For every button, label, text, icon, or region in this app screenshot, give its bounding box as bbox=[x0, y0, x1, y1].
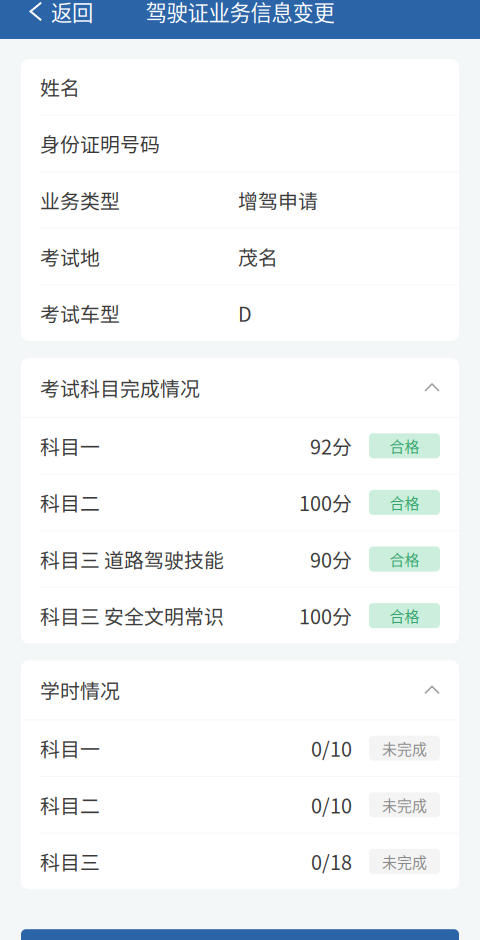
staticText: 驾驶证业务信息变更 bbox=[145, 0, 334, 27]
staticText: 业务类型 bbox=[40, 186, 120, 214]
staticText: 科目一 bbox=[40, 734, 100, 763]
button[interactable]: 返回 bbox=[0, 0, 107, 27]
staticText: 未完成 bbox=[382, 851, 427, 872]
staticText: 100分 bbox=[299, 488, 352, 517]
staticText: 考试科目完成情况 bbox=[40, 373, 200, 402]
button[interactable]: 提交 bbox=[21, 929, 459, 940]
staticText: 科目三 道路驾驶技能 bbox=[40, 545, 224, 573]
staticText: 考试地 bbox=[40, 242, 100, 271]
staticText: 姓名 bbox=[40, 72, 80, 101]
staticText: 100分 bbox=[299, 601, 352, 630]
staticText: 0/10 bbox=[311, 790, 352, 819]
staticText: 科目二 bbox=[40, 790, 100, 819]
staticText: 92分 bbox=[310, 431, 352, 460]
staticText: 合格 bbox=[389, 605, 419, 626]
staticText: 合格 bbox=[389, 548, 419, 570]
staticText: 合格 bbox=[389, 435, 419, 457]
staticText: 科目二 bbox=[40, 488, 100, 517]
staticText: 90分 bbox=[310, 545, 352, 573]
staticText: D bbox=[238, 299, 252, 328]
button[interactable]: 考试科目完成情况 bbox=[21, 358, 459, 417]
staticText: 未完成 bbox=[382, 737, 427, 759]
staticText: 科目三 安全文明常识 bbox=[40, 601, 224, 630]
staticText: 身份证明号码 bbox=[40, 129, 160, 158]
staticText: 0/10 bbox=[311, 734, 352, 763]
staticText: 学时情况 bbox=[40, 675, 120, 704]
button[interactable]: 学时情况 bbox=[21, 660, 459, 719]
staticText: 未完成 bbox=[382, 794, 427, 816]
staticText: 返回 bbox=[51, 0, 93, 27]
staticText: 科目一 bbox=[40, 431, 100, 460]
staticText: 合格 bbox=[389, 492, 419, 513]
staticText: 科目三 bbox=[40, 847, 100, 876]
staticText: 考试车型 bbox=[40, 299, 120, 328]
staticText: 0/18 bbox=[311, 847, 352, 876]
staticText: 增驾申请 bbox=[238, 186, 318, 214]
staticText: 茂名 bbox=[238, 242, 278, 271]
